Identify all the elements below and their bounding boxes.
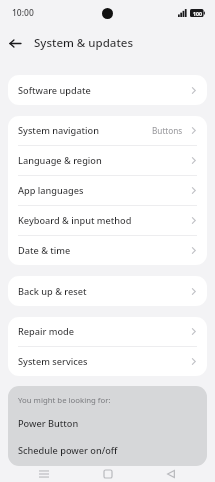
button[interactable]: Home [88, 466, 128, 482]
button[interactable]: Back up & reset [8, 276, 207, 306]
button[interactable]: Software update [8, 75, 207, 105]
staticText: Language & region [18, 154, 102, 167]
staticText: Date & time [18, 244, 71, 257]
staticText: System & updates [34, 35, 133, 51]
staticText: System navigation [18, 124, 99, 137]
staticText: System services [18, 355, 88, 368]
staticText: Schedule power on/off [18, 444, 118, 457]
button[interactable]: Power Button [18, 417, 197, 430]
button[interactable]: Back [0, 28, 30, 58]
button[interactable]: System navigation [8, 116, 207, 145]
staticText: Repair mode [18, 325, 75, 338]
button[interactable]: App languages [8, 176, 207, 205]
staticText: App languages [18, 184, 84, 197]
staticText: Power Button [18, 417, 79, 430]
button[interactable]: System services [8, 347, 207, 376]
staticText: You might be looking for: [18, 395, 111, 406]
button[interactable]: Keyboard & input method [8, 206, 207, 235]
button[interactable]: Schedule power on/off [18, 444, 197, 457]
staticText: Buttons [152, 125, 183, 136]
staticText: Back up & reset [18, 285, 87, 298]
button[interactable]: Recent apps [24, 466, 64, 482]
button[interactable]: Back [151, 466, 191, 482]
button[interactable]: Repair mode [8, 317, 207, 346]
staticText: Software update [18, 84, 91, 97]
staticText: 100 [193, 10, 202, 17]
button[interactable]: Language & region [8, 146, 207, 175]
button[interactable]: Date & time [8, 236, 207, 265]
staticText: Keyboard & input method [18, 214, 132, 227]
staticText: 10:00 [12, 7, 34, 19]
